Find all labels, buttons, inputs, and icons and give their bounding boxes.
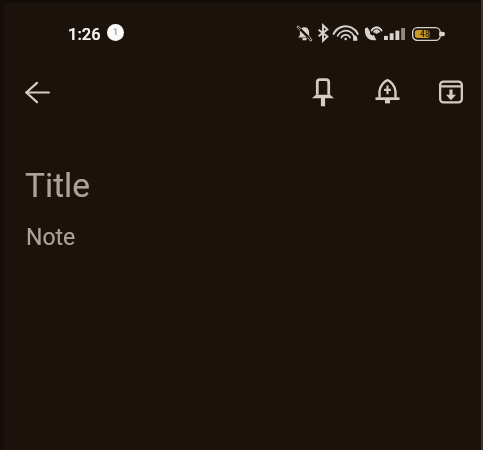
button[interactable]: Title (20, 161, 463, 209)
button[interactable]: Archive (427, 68, 475, 116)
staticText: 1 (113, 27, 119, 38)
staticText: 48 (420, 29, 430, 39)
staticText: 1:26 (68, 25, 101, 44)
staticText: Title (25, 166, 91, 205)
staticText: Note (26, 224, 76, 251)
button[interactable]: Pin note (299, 68, 347, 116)
button[interactable]: Add reminder (363, 68, 411, 116)
button[interactable]: Note (20, 218, 463, 256)
button[interactable]: Navigate up (13, 68, 61, 116)
